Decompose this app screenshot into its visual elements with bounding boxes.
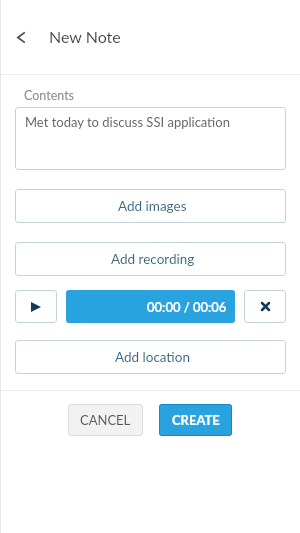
staticText: 00:00 / 00:06 [147, 299, 227, 315]
button[interactable]: Add location [15, 340, 286, 374]
button[interactable]: Play [15, 290, 57, 323]
staticText: Add images [118, 198, 187, 214]
button[interactable]: Add images [15, 189, 286, 223]
staticText: Add recording [111, 251, 195, 267]
button[interactable]: CREATE [159, 404, 232, 436]
button[interactable]: Met today to discuss SSI application [15, 107, 286, 170]
button[interactable]: Delete recording [244, 290, 286, 323]
staticText: Add location [115, 349, 190, 365]
staticText: CANCEL [80, 412, 131, 428]
staticText: Contents [24, 88, 75, 103]
button[interactable]: Back [6, 22, 36, 52]
staticText: Met today to discuss SSI application [25, 114, 230, 130]
button[interactable]: CANCEL [68, 404, 143, 436]
staticText: CREATE [172, 412, 220, 428]
button[interactable]: Add recording [15, 242, 286, 276]
button[interactable]: 00:00 / 00:06 [66, 290, 235, 323]
staticText: New Note [49, 27, 121, 46]
